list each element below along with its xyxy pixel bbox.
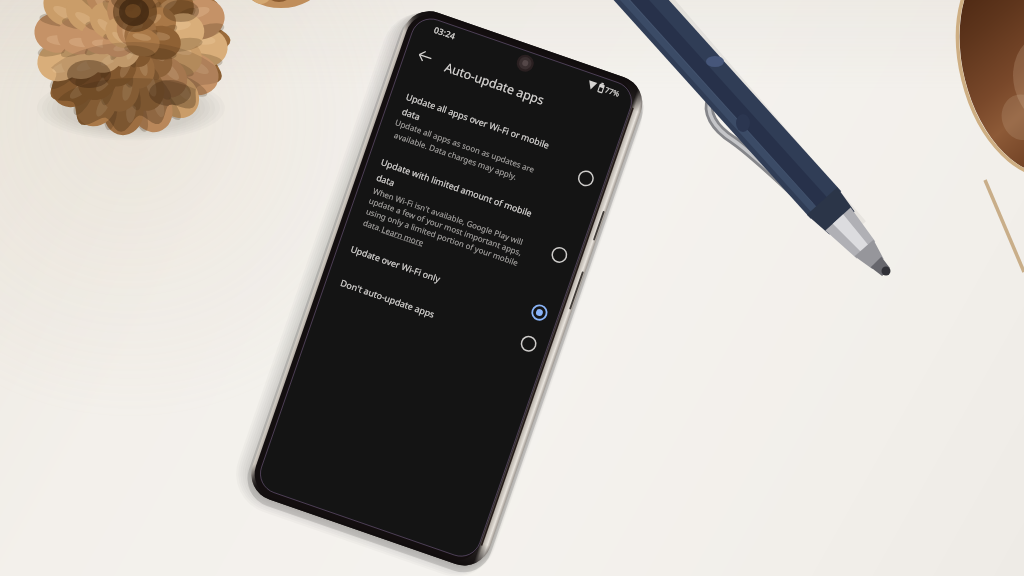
button[interactable]	[334, 230, 562, 334]
button[interactable]: Select don't auto-update apps	[509, 325, 547, 363]
button[interactable]	[378, 77, 615, 207]
button[interactable]: Select update over Wi-Fi or mobile data	[567, 159, 605, 197]
button[interactable]	[323, 262, 551, 366]
button[interactable]: Back	[407, 41, 441, 73]
button[interactable]: Select update over Wi-Fi only	[520, 293, 558, 331]
button[interactable]: Select limited mobile data updates	[540, 236, 578, 274]
button[interactable]	[346, 143, 592, 300]
